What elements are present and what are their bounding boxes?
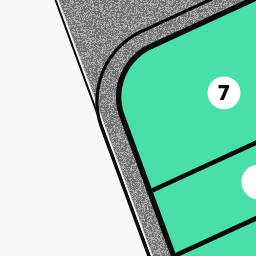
button[interactable]: Tilted phone mockup showing a numbered l…: [0, 0, 256, 256]
